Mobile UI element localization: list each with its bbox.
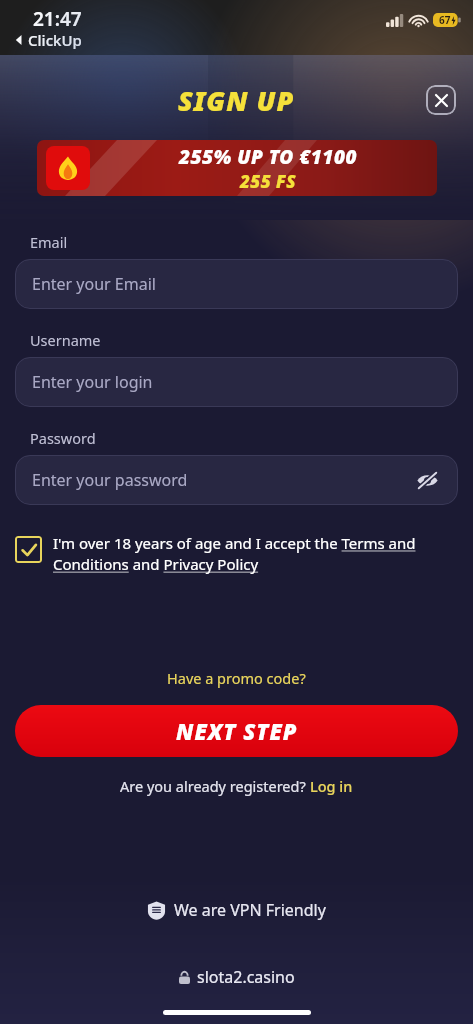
button[interactable]: Have a promo code? — [15, 668, 458, 688]
staticText: 67 — [439, 13, 451, 27]
staticText: We are VPN Friendly — [174, 899, 326, 921]
staticText: 255% UP TO €1100 — [179, 144, 357, 170]
button[interactable]: Enter your login — [15, 357, 458, 407]
staticText: I'm over 18 years of age and I accept th… — [53, 533, 458, 575]
button[interactable]: Log in — [310, 776, 353, 796]
staticText: Are you already registered? — [120, 776, 310, 796]
staticText: Username — [30, 330, 101, 350]
staticText: NEXT STEP — [176, 716, 298, 746]
staticText: Email — [30, 232, 68, 252]
staticText: Enter your Email — [32, 273, 156, 295]
staticText: ClickUp — [28, 30, 82, 50]
staticText: 255 FS — [240, 170, 296, 193]
button[interactable]: NEXT STEP — [15, 705, 458, 757]
staticText: 21:47 — [33, 6, 82, 32]
staticText: Log in — [310, 776, 353, 796]
button[interactable]: Close — [426, 85, 456, 115]
staticText: SIGN UP — [178, 82, 295, 119]
button[interactable]: 255% UP TO €1100 — [37, 140, 437, 196]
button[interactable]: Show password — [414, 467, 440, 493]
button[interactable]: Enter your Email — [15, 259, 458, 309]
staticText: Password — [30, 428, 96, 448]
staticText: Enter your password — [32, 469, 188, 491]
button[interactable]: Enter your password — [15, 455, 458, 505]
staticText: slota2.casino — [197, 966, 295, 988]
button[interactable]: We are VPN Friendly — [147, 899, 326, 921]
button[interactable]: I'm over 18 years of age and I accept th… — [15, 533, 458, 575]
staticText: Enter your login — [32, 371, 153, 393]
staticText: Have a promo code? — [167, 668, 306, 688]
